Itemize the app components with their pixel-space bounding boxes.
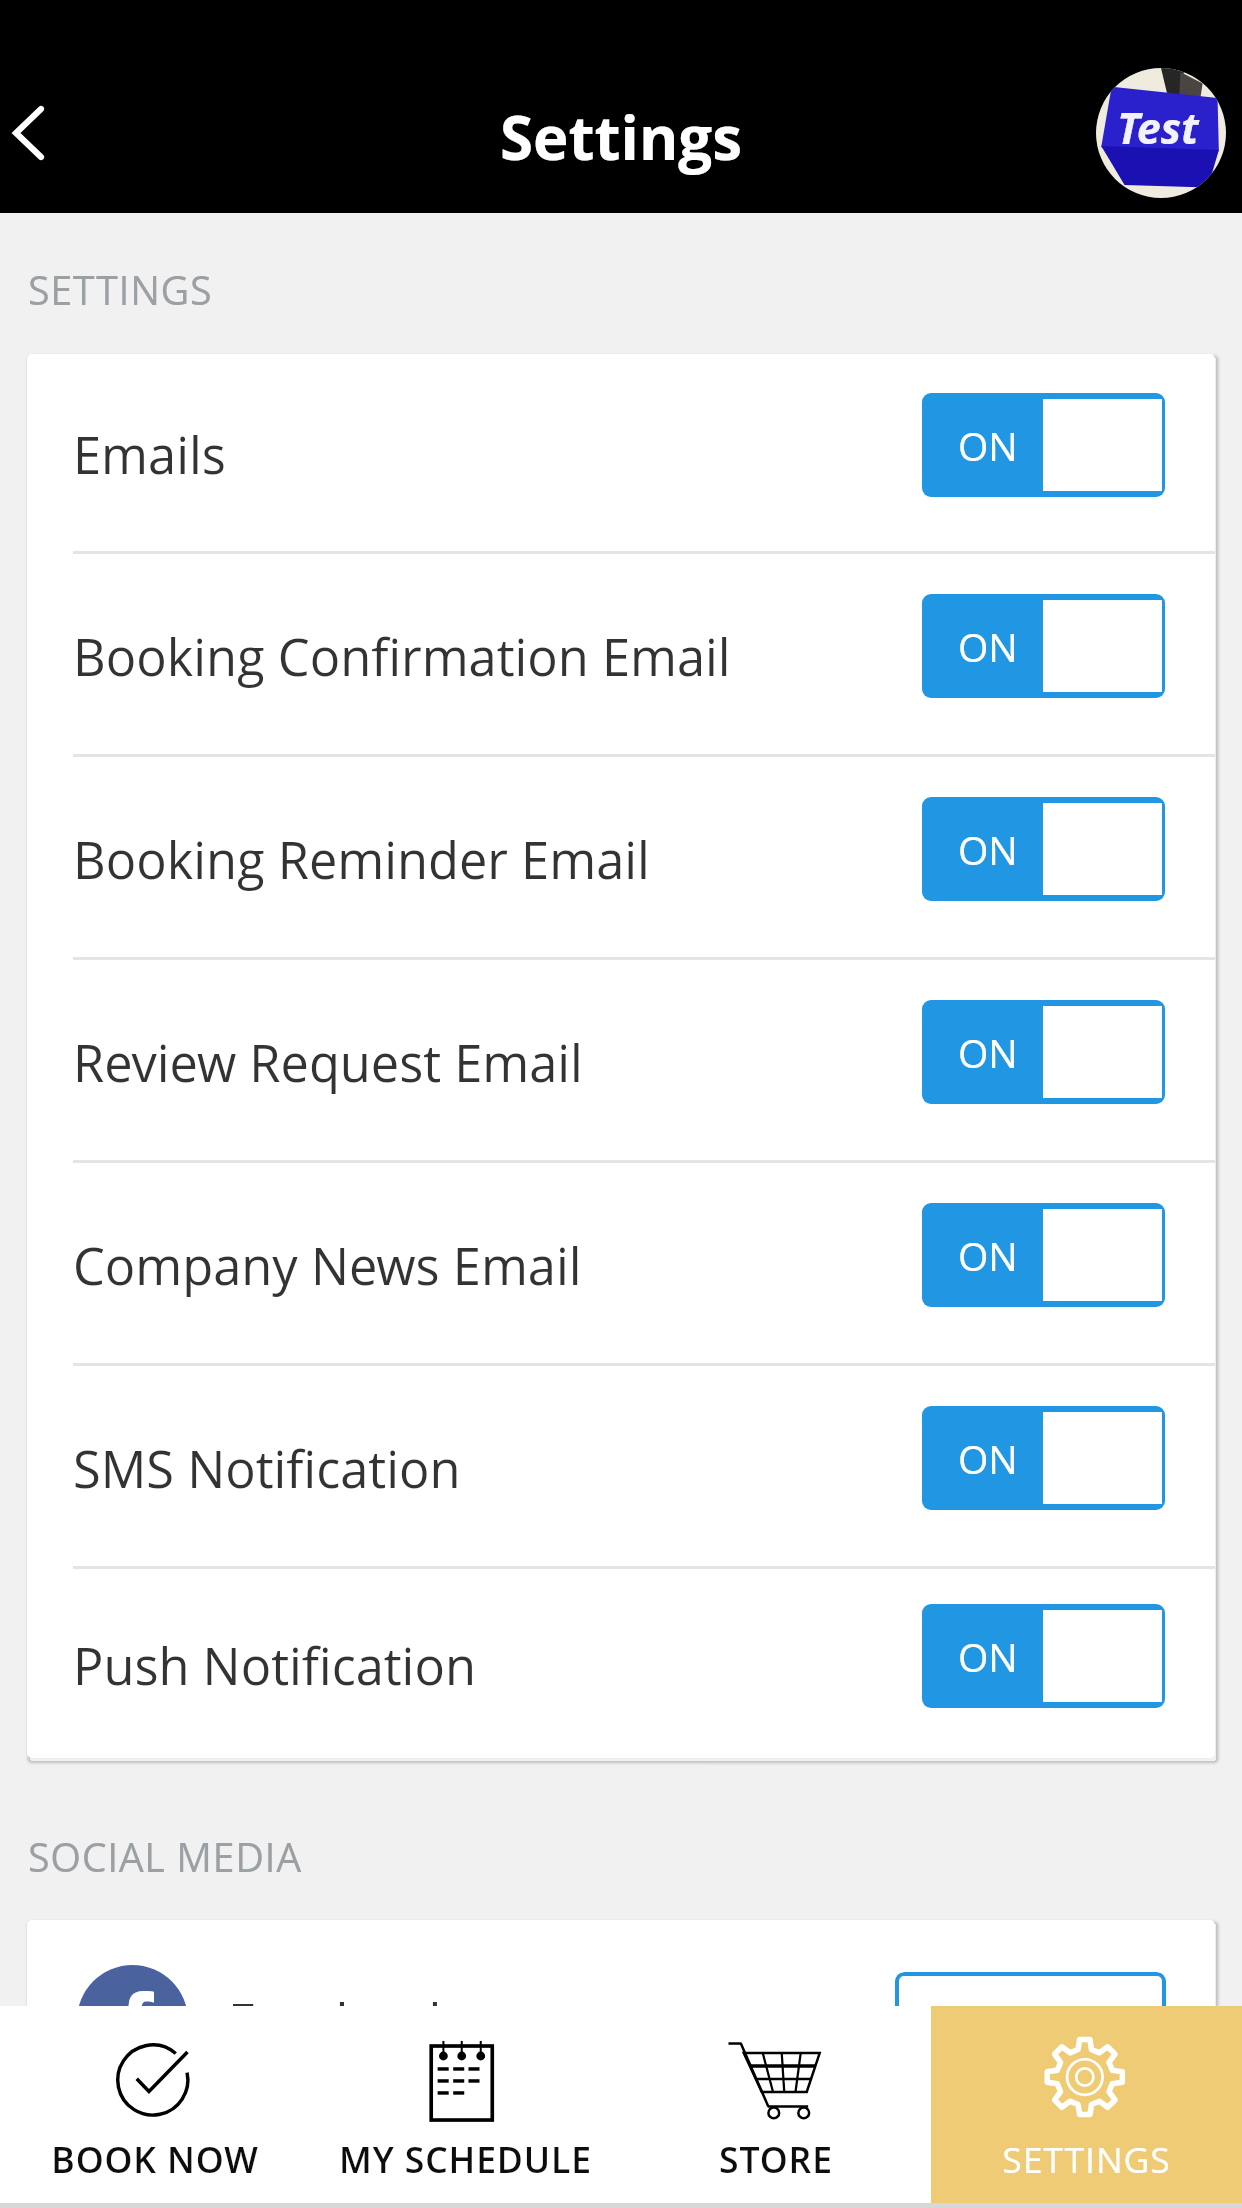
- button[interactable]: Toggle on: [922, 1203, 1165, 1307]
- button[interactable]: Booking Confirmation Email: [27, 554, 1215, 754]
- staticText: Review Request Email: [73, 1028, 922, 1097]
- button[interactable]: Booking Reminder Email: [27, 757, 1215, 957]
- button[interactable]: CONNECT: [895, 1972, 1166, 2068]
- staticText: ON: [958, 1630, 1018, 1683]
- button[interactable]: Toggle on: [922, 1604, 1165, 1708]
- staticText: MY SCHEDULE: [339, 2135, 592, 2183]
- button[interactable]: Profile: [1096, 68, 1226, 198]
- staticText: BOOK NOW: [51, 2135, 259, 2183]
- staticText: ON: [958, 1432, 1018, 1485]
- staticText: CONNECT: [938, 1993, 1124, 2047]
- staticText: SETTINGS: [28, 263, 213, 317]
- staticText: STORE: [719, 2135, 833, 2183]
- button[interactable]: Toggle on: [922, 797, 1165, 901]
- staticText: ON: [958, 823, 1018, 876]
- button[interactable]: MY SCHEDULE: [310, 2006, 620, 2203]
- staticText: SMS Notification: [73, 1434, 922, 1503]
- staticText: Push Notification: [73, 1631, 922, 1700]
- staticText: Settings: [500, 96, 743, 178]
- staticText: Facebook: [228, 1986, 895, 2055]
- staticText: Test: [1117, 98, 1199, 157]
- button[interactable]: Toggle on: [922, 1000, 1165, 1104]
- button[interactable]: Emails: [27, 354, 1215, 551]
- staticText: Emails: [73, 420, 922, 489]
- button[interactable]: SMS Notification: [27, 1366, 1215, 1566]
- staticText: SETTINGS: [1002, 2135, 1171, 2183]
- staticText: Booking Confirmation Email: [73, 622, 922, 691]
- staticText: ON: [958, 620, 1018, 673]
- button[interactable]: Toggle on: [922, 1406, 1165, 1510]
- staticText: ON: [958, 419, 1018, 472]
- staticText: SOCIAL MEDIA: [28, 1830, 302, 1884]
- staticText: f: [120, 1965, 154, 2076]
- staticText: Company News Email: [73, 1231, 922, 1300]
- staticText: ON: [958, 1229, 1018, 1282]
- staticText: Booking Reminder Email: [73, 825, 922, 894]
- button[interactable]: Review Request Email: [27, 960, 1215, 1160]
- button[interactable]: BOOK NOW: [0, 2006, 310, 2203]
- button[interactable]: Toggle on: [922, 594, 1165, 698]
- button[interactable]: Company News Email: [27, 1163, 1215, 1363]
- staticText: ON: [958, 1026, 1018, 1079]
- button[interactable]: Toggle on: [922, 393, 1165, 497]
- button[interactable]: STORE: [620, 2006, 931, 2203]
- button[interactable]: Back: [0, 76, 90, 190]
- button[interactable]: Push Notification: [27, 1569, 1215, 1758]
- button[interactable]: SETTINGS: [931, 2006, 1242, 2203]
